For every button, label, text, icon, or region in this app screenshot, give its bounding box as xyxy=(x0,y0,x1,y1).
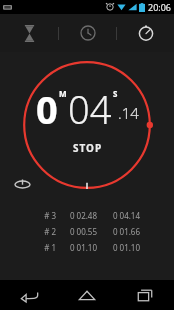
button[interactable]: Recent apps xyxy=(116,280,174,310)
button[interactable]: Stop stopwatch xyxy=(22,60,152,190)
staticText: # 3 xyxy=(34,210,56,221)
staticText: 0 02.48 xyxy=(63,210,97,221)
staticText: # 1 xyxy=(34,242,56,253)
button[interactable]: Timer xyxy=(0,14,58,52)
button[interactable]: Clock xyxy=(59,14,116,52)
staticText: M xyxy=(59,88,67,99)
staticText: 20:06 xyxy=(148,1,172,13)
staticText: 0 00.55 xyxy=(63,226,97,237)
staticText: 04 xyxy=(68,83,112,135)
button[interactable]: Home xyxy=(58,280,116,310)
button[interactable]: # 1 xyxy=(0,242,174,253)
staticText: .14 xyxy=(118,103,139,123)
staticText: 0 01.10 xyxy=(106,242,140,253)
button[interactable]: Back xyxy=(0,280,58,310)
staticText: 0 xyxy=(36,83,58,135)
staticText: S xyxy=(113,88,118,99)
button[interactable]: Lap xyxy=(8,170,36,198)
staticText: 0 01.10 xyxy=(63,242,97,253)
button[interactable]: # 3 xyxy=(0,210,174,221)
staticText: 0 01.66 xyxy=(106,226,140,237)
button[interactable]: # 2 xyxy=(0,226,174,237)
button[interactable]: Stopwatch xyxy=(117,14,174,52)
staticText: 0 04.14 xyxy=(106,210,140,221)
staticText: # 2 xyxy=(34,226,56,237)
staticText: STOP xyxy=(73,141,103,155)
